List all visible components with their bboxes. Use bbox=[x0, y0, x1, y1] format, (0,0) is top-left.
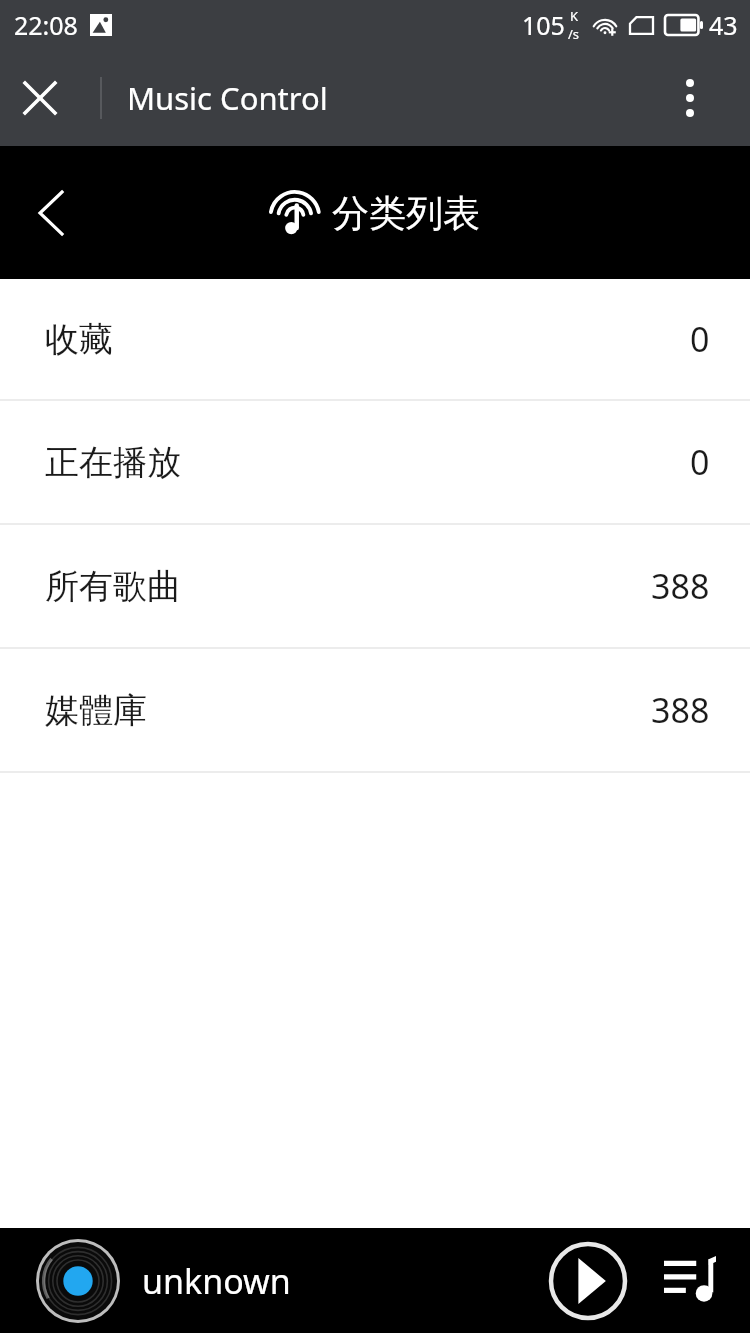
staticText: 收藏 bbox=[45, 318, 113, 361]
staticText: 105 bbox=[522, 8, 565, 42]
staticText: 43 bbox=[709, 8, 738, 42]
button[interactable]: Close bbox=[10, 68, 70, 128]
staticText: 22:08 bbox=[14, 8, 78, 42]
staticText: 388 bbox=[651, 563, 710, 609]
staticText: 0 bbox=[690, 439, 710, 485]
staticText: 所有歌曲 bbox=[45, 565, 181, 608]
staticText: Music Control bbox=[127, 77, 328, 119]
button[interactable]: Play bbox=[546, 1239, 630, 1323]
button[interactable]: 媒體庫 bbox=[0, 649, 750, 771]
staticText: 0 bbox=[690, 316, 710, 362]
staticText: /s bbox=[568, 25, 580, 43]
staticText: 分类列表 bbox=[332, 190, 480, 237]
staticText: 正在播放 bbox=[45, 441, 181, 484]
button[interactable]: Album art bbox=[36, 1239, 120, 1323]
staticText: K bbox=[570, 7, 579, 25]
button[interactable]: 正在播放 bbox=[0, 401, 750, 523]
button[interactable]: More options bbox=[662, 70, 718, 126]
button[interactable]: 收藏 bbox=[0, 279, 750, 399]
button[interactable]: Playlist bbox=[652, 1243, 728, 1319]
staticText: unknown bbox=[142, 1258, 291, 1304]
staticText: 媒體庫 bbox=[45, 689, 147, 732]
staticText: 388 bbox=[651, 687, 710, 733]
button[interactable]: 所有歌曲 bbox=[0, 525, 750, 647]
button[interactable]: Back bbox=[16, 178, 86, 248]
